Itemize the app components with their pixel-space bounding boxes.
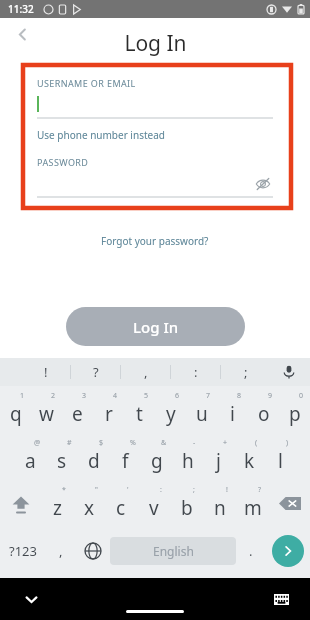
button[interactable]: Backspace bbox=[269, 480, 310, 527]
button[interactable]: , bbox=[121, 358, 170, 386]
staticText: a bbox=[25, 448, 36, 474]
button[interactable]: ; bbox=[221, 358, 270, 386]
staticText: English bbox=[153, 543, 194, 559]
staticText: 0 bbox=[299, 391, 304, 401]
button[interactable]: English bbox=[110, 537, 236, 565]
button[interactable]: 1 bbox=[0, 386, 31, 433]
button[interactable]: 0 bbox=[279, 386, 310, 433]
button[interactable]: : bbox=[137, 480, 170, 527]
button[interactable]: ! bbox=[22, 358, 70, 386]
button[interactable] bbox=[37, 89, 273, 119]
button[interactable]: ( bbox=[234, 433, 265, 480]
button[interactable]: " bbox=[73, 480, 105, 527]
staticText: k bbox=[244, 448, 255, 474]
staticText: ; bbox=[244, 363, 248, 381]
button[interactable]: 6 bbox=[155, 386, 186, 433]
staticText: ' bbox=[127, 485, 129, 495]
button[interactable]: ?123 bbox=[0, 527, 46, 574]
staticText: 5 bbox=[144, 391, 149, 401]
staticText: 6 bbox=[175, 391, 180, 401]
staticText: x bbox=[84, 495, 95, 521]
staticText: q bbox=[10, 401, 22, 427]
button[interactable]: 2 bbox=[31, 386, 62, 433]
button[interactable]: ? bbox=[236, 480, 269, 527]
button[interactable]: Show password bbox=[37, 168, 273, 198]
button[interactable]: ? bbox=[71, 358, 120, 386]
button[interactable]: Shift bbox=[0, 480, 41, 527]
staticText: u bbox=[196, 401, 208, 427]
staticText: d bbox=[88, 448, 100, 474]
button[interactable]: Show password bbox=[253, 174, 273, 194]
staticText: 3 bbox=[82, 391, 87, 401]
staticText: ? bbox=[93, 363, 99, 381]
staticText: z bbox=[53, 495, 62, 521]
staticText: v bbox=[149, 495, 159, 521]
staticText: b bbox=[181, 495, 193, 521]
staticText: @ bbox=[34, 438, 41, 448]
button[interactable]: ' bbox=[105, 480, 137, 527]
button[interactable]: Forgot your password? bbox=[101, 234, 209, 248]
button[interactable]: : bbox=[171, 358, 220, 386]
button[interactable]: Hide keyboard bbox=[18, 586, 44, 612]
button[interactable]: ! bbox=[203, 480, 236, 527]
staticText: 8 bbox=[237, 391, 242, 401]
button[interactable]: Switch keyboard bbox=[268, 586, 294, 612]
button[interactable]: 9 bbox=[248, 386, 279, 433]
button[interactable]: 7 bbox=[186, 386, 217, 433]
button[interactable]: 3 bbox=[62, 386, 93, 433]
button[interactable]: Voice input bbox=[278, 361, 300, 383]
button[interactable]: * bbox=[41, 480, 73, 527]
staticText: : bbox=[160, 485, 162, 495]
staticText: , bbox=[144, 363, 148, 381]
button[interactable]: ; bbox=[170, 480, 203, 527]
staticText: % bbox=[130, 438, 136, 448]
button[interactable]: Enter bbox=[266, 527, 310, 574]
staticText: , bbox=[59, 542, 63, 560]
staticText: + bbox=[223, 438, 228, 448]
staticText: PASSWORD bbox=[37, 156, 89, 168]
staticText: 1 bbox=[20, 391, 25, 401]
button[interactable]: 4 bbox=[93, 386, 124, 433]
staticText: : bbox=[194, 363, 198, 381]
staticText: ; bbox=[193, 485, 195, 495]
button[interactable]: , bbox=[46, 527, 76, 574]
staticText: ! bbox=[226, 485, 228, 495]
button[interactable]: @ bbox=[14, 433, 46, 480]
staticText: ! bbox=[44, 363, 48, 381]
button[interactable]: 5 bbox=[124, 386, 155, 433]
staticText: o bbox=[258, 401, 270, 427]
button[interactable]: & bbox=[141, 433, 172, 480]
staticText: r bbox=[105, 401, 113, 427]
button[interactable]: ) bbox=[265, 433, 296, 480]
staticText: t bbox=[136, 401, 143, 427]
staticText: l bbox=[278, 448, 283, 474]
staticText: n bbox=[214, 495, 226, 521]
staticText: m bbox=[244, 495, 262, 521]
staticText: p bbox=[289, 401, 301, 427]
button[interactable]: Change language bbox=[76, 527, 110, 574]
button[interactable]: + bbox=[203, 433, 234, 480]
button[interactable]: - bbox=[172, 433, 203, 480]
staticText: 4 bbox=[113, 391, 118, 401]
staticText: Log In bbox=[133, 317, 179, 337]
staticText: y bbox=[166, 401, 176, 427]
staticText: f bbox=[122, 448, 129, 474]
button[interactable]: $ bbox=[78, 433, 110, 480]
staticText: j bbox=[216, 448, 221, 474]
staticText: ? bbox=[258, 485, 262, 495]
staticText: c bbox=[116, 495, 126, 521]
staticText: ) bbox=[286, 438, 289, 448]
staticText: s bbox=[57, 448, 67, 474]
staticText: 7 bbox=[206, 391, 211, 401]
button[interactable]: # bbox=[46, 433, 78, 480]
button[interactable]: Back bbox=[8, 20, 36, 48]
button[interactable]: % bbox=[110, 433, 141, 480]
staticText: 11:32 bbox=[8, 2, 34, 16]
staticText: & bbox=[161, 438, 167, 448]
staticText: - bbox=[193, 438, 196, 448]
button[interactable]: . bbox=[236, 527, 266, 574]
button[interactable]: 8 bbox=[217, 386, 248, 433]
staticText: # bbox=[67, 438, 72, 448]
button[interactable]: Use phone number instead bbox=[37, 128, 165, 142]
button[interactable]: Log In bbox=[66, 307, 245, 346]
